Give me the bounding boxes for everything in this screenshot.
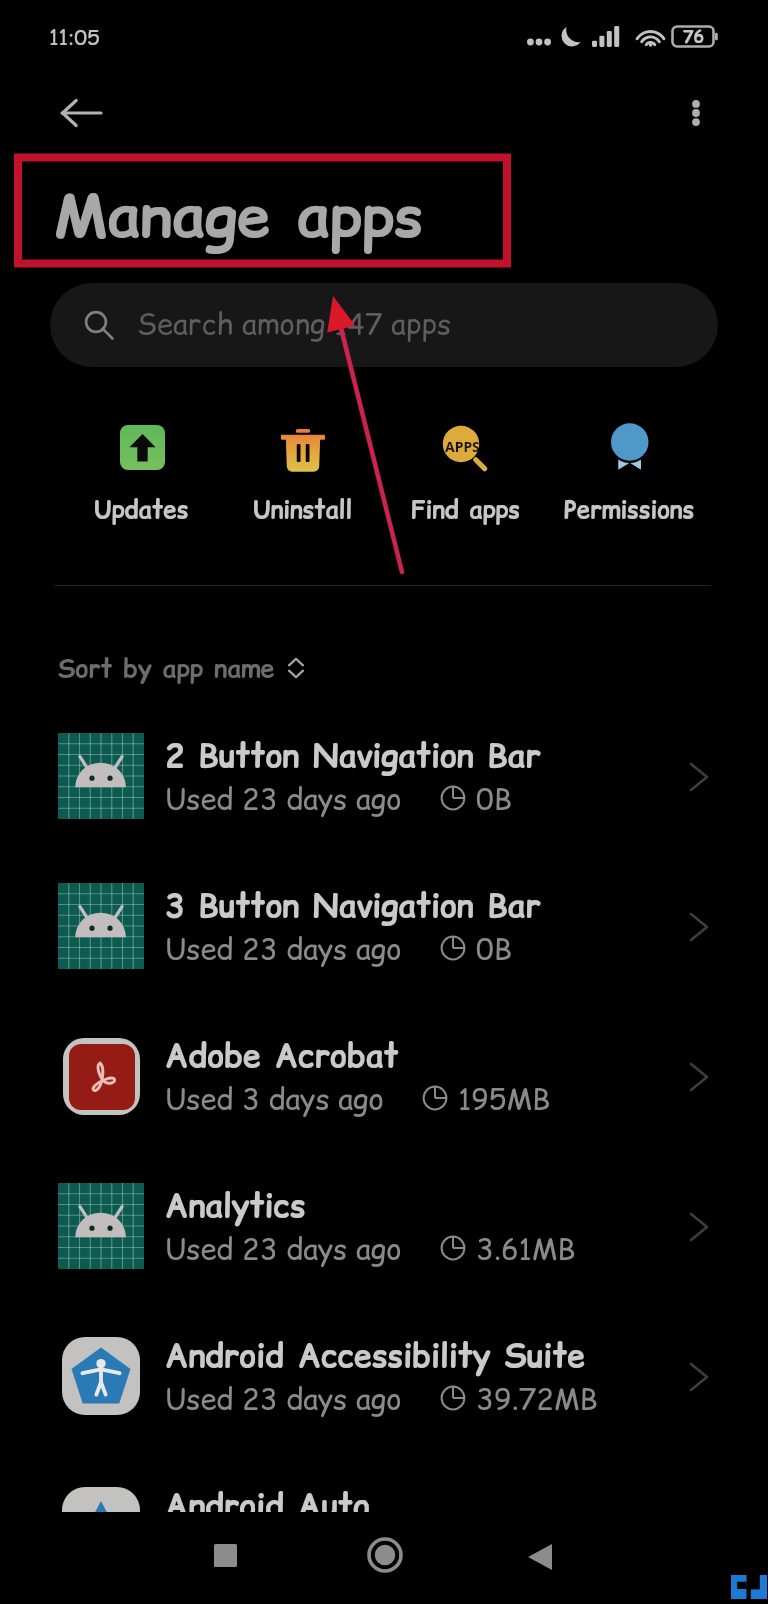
button[interactable]: 3 Button Navigation Bar xyxy=(0,883,768,979)
staticText: Manage apps xyxy=(54,174,424,258)
staticText: Permissions xyxy=(564,493,695,526)
staticText: 2 Button Navigation Bar xyxy=(165,733,541,778)
staticText: 195MB xyxy=(458,1078,551,1118)
button[interactable]: Updates xyxy=(63,422,219,532)
staticText: Sort by app name xyxy=(58,651,275,686)
staticText: 3.61MB xyxy=(476,1228,576,1268)
button[interactable]: Navigate up xyxy=(57,89,105,137)
button[interactable]: Recent apps xyxy=(199,1529,252,1582)
staticText: Used 23 days ago xyxy=(165,1228,402,1268)
button[interactable]: Back xyxy=(513,1530,566,1583)
button[interactable]: Analytics xyxy=(0,1183,768,1279)
staticText: Updates xyxy=(94,493,189,526)
button[interactable]: APPS xyxy=(388,422,544,532)
staticText: Adobe Acrobat xyxy=(165,1033,399,1078)
staticText: Used 23 days ago xyxy=(165,1378,402,1418)
staticText: Android Auto xyxy=(165,1483,370,1528)
staticText: 3 Button Navigation Bar xyxy=(165,883,541,928)
staticText: 39.72MB xyxy=(476,1378,598,1418)
button[interactable]: Home xyxy=(358,1528,411,1581)
staticText: Search among 147 apps xyxy=(137,303,452,343)
staticText: Used 23 days ago xyxy=(165,778,402,818)
staticText: 0B xyxy=(476,778,512,818)
button[interactable]: More options xyxy=(672,89,720,137)
staticText: 11.2MB xyxy=(476,1528,571,1568)
staticText: 11:05 xyxy=(49,23,100,52)
staticText: 76 xyxy=(683,25,704,46)
button[interactable]: 2 Button Navigation Bar xyxy=(0,733,768,829)
staticText: Android Accessibility Suite xyxy=(165,1333,586,1378)
staticText: APPS xyxy=(445,437,480,456)
staticText: Analytics xyxy=(165,1183,306,1228)
staticText: Uninstall xyxy=(253,493,353,526)
staticText: Used 3 days ago xyxy=(165,1078,384,1118)
button[interactable]: Search among 147 apps xyxy=(50,283,718,367)
button[interactable]: Android Accessibility Suite xyxy=(0,1333,768,1429)
staticText: 0B xyxy=(476,928,512,968)
staticText: Used 23 days ago xyxy=(165,928,402,968)
button[interactable]: Sort by app name xyxy=(36,640,336,696)
staticText: Used 23 days ago xyxy=(165,1528,402,1568)
button[interactable]: Adobe Acrobat xyxy=(0,1033,768,1129)
staticText: Find apps xyxy=(411,493,521,526)
button[interactable]: Android Auto xyxy=(0,1483,768,1579)
button[interactable]: Permissions xyxy=(551,422,707,532)
button[interactable]: Uninstall xyxy=(225,422,381,532)
